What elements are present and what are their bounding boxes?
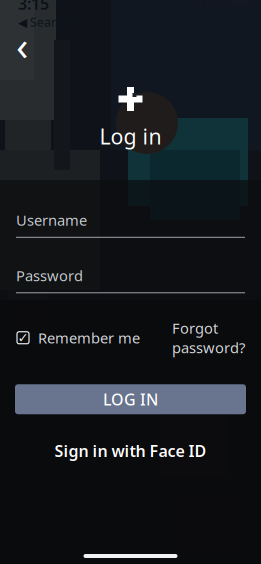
staticText: ◀ Search — [18, 14, 69, 30]
staticText: LOG IN — [103, 389, 158, 410]
button[interactable]: Back — [2, 28, 42, 62]
button[interactable]: Sign in with Face ID — [15, 436, 246, 465]
staticText: Log in — [99, 122, 161, 150]
staticText: Password — [16, 266, 83, 285]
button[interactable]: ✓ — [16, 324, 140, 351]
staticText: Forgot password? — [172, 318, 245, 357]
staticText: 3:15 — [18, 0, 49, 14]
staticText: Sign in with Face ID — [54, 440, 206, 461]
button[interactable]: Forgot password? — [172, 314, 245, 361]
staticText: ✓ — [17, 330, 28, 345]
staticText: Remember me — [38, 328, 140, 347]
staticText: ‹ — [16, 18, 28, 71]
button[interactable]: LOG IN — [15, 384, 246, 414]
staticText: Username — [16, 210, 87, 230]
